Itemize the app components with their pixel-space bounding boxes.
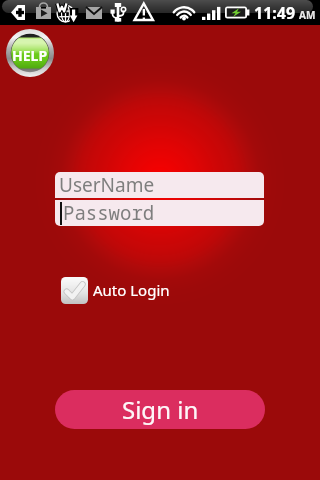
- staticText: AM: [299, 8, 316, 22]
- staticText: UserName: [59, 172, 155, 198]
- button[interactable]: UserName field: [55, 172, 264, 198]
- button[interactable]: Password field: [55, 200, 264, 226]
- button[interactable]: Sign in: [55, 390, 265, 429]
- staticText: HELP: [12, 46, 48, 65]
- staticText: Sign in: [122, 393, 199, 426]
- button[interactable]: Help: [6, 29, 54, 77]
- staticText: Password: [63, 200, 155, 226]
- button[interactable]: Auto Login: [61, 277, 170, 304]
- staticText: Auto Login: [93, 280, 170, 300]
- staticText: 11:49: [254, 2, 296, 24]
